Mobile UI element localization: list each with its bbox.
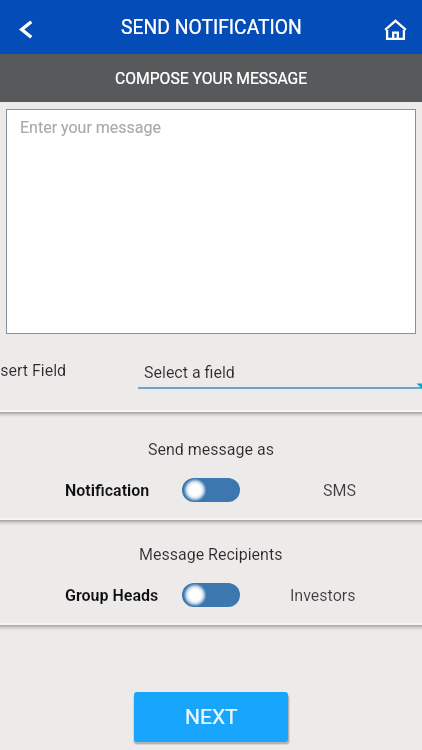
staticText: SEND NOTIFICATION — [121, 16, 302, 39]
staticText: Investors — [290, 586, 356, 605]
staticText: Group Heads — [65, 586, 159, 605]
button[interactable]: Enter your message — [6, 109, 416, 334]
staticText: COMPOSE YOUR MESSAGE — [115, 69, 308, 87]
button[interactable]: Toggle between Notification and SMS — [182, 478, 240, 502]
staticText: Send message as — [148, 440, 274, 459]
button[interactable]: Toggle between Group Heads and Investors — [182, 583, 240, 607]
staticText: NEXT — [185, 705, 238, 730]
button[interactable]: NEXT — [134, 692, 288, 742]
staticText: Enter your message — [20, 118, 162, 137]
button[interactable]: Home — [368, 0, 422, 54]
staticText: SMS — [323, 481, 356, 500]
staticText: Insert Field — [0, 361, 67, 380]
staticText: Select a field — [144, 363, 235, 382]
staticText: Message Recipients — [139, 545, 283, 564]
button[interactable]: Back — [0, 0, 52, 54]
staticText: Notification — [65, 481, 150, 500]
button[interactable]: Select a field — [138, 352, 422, 392]
